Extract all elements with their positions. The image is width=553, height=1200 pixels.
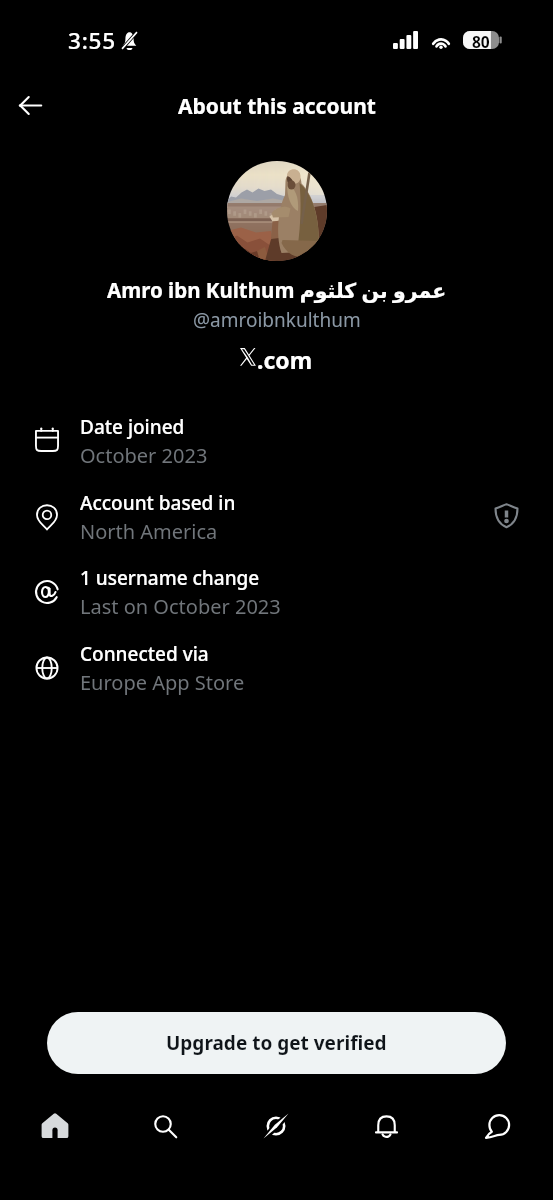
button[interactable]: Notifications: [331, 1100, 442, 1152]
button[interactable]: Account based in: [0, 486, 553, 560]
button[interactable]: Messages: [442, 1100, 553, 1152]
button[interactable]: Search: [110, 1100, 220, 1152]
button[interactable]: Grok: [220, 1100, 331, 1152]
staticText: @amroibnkulthum: [193, 307, 361, 333]
button[interactable]: Connected via: [0, 637, 553, 711]
staticText: Connected via: [80, 641, 209, 667]
staticText: North America: [80, 518, 218, 545]
staticText: 1 username change: [80, 565, 260, 591]
staticText: Europe App Store: [80, 669, 245, 696]
staticText: 3:55: [68, 25, 116, 56]
staticText: Amro ibn Kulthum عمرو بن كلثوم: [107, 276, 447, 304]
staticText: About this account: [178, 92, 376, 121]
button[interactable]: Back: [8, 83, 52, 127]
button[interactable]: Date joined: [0, 410, 553, 484]
staticText: Date joined: [80, 414, 185, 440]
staticText: October 2023: [80, 442, 208, 469]
button[interactable]: Upgrade to get verified: [47, 1012, 506, 1074]
button[interactable]: 1 username change: [0, 561, 553, 635]
staticText: 80: [472, 31, 490, 49]
staticText: .com: [257, 344, 313, 375]
staticText: Account based in: [80, 490, 236, 516]
button[interactable]: Home: [0, 1100, 110, 1152]
staticText: Upgrade to get verified: [166, 1030, 387, 1056]
staticText: Last on October 2023: [80, 593, 281, 620]
